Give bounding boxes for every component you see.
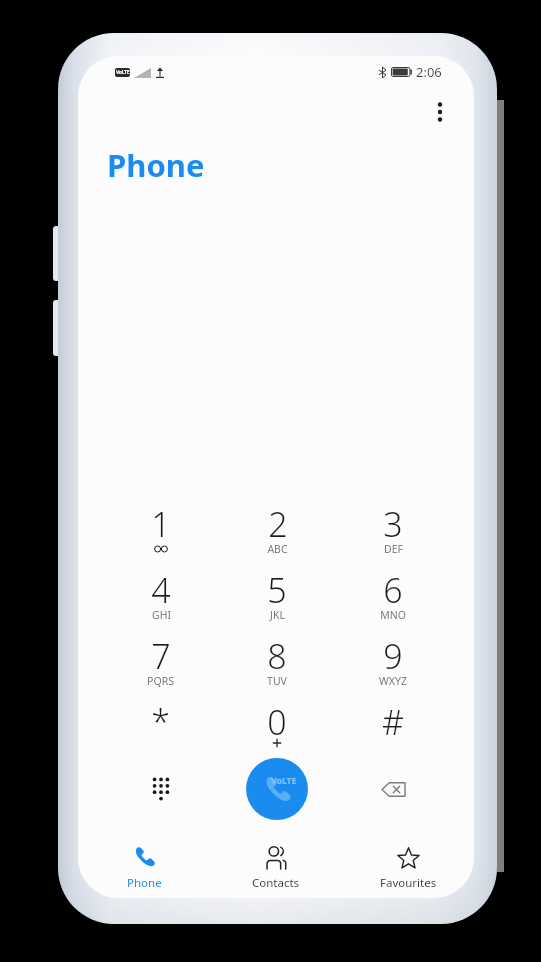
staticText: Phone xyxy=(127,875,162,891)
staticText: 6 xyxy=(383,567,403,613)
button[interactable]: Favourites xyxy=(342,838,474,896)
button[interactable]: 2 xyxy=(219,501,335,567)
staticText: 8 xyxy=(267,633,287,679)
button[interactable]: 8 xyxy=(219,633,335,699)
button[interactable]: Call xyxy=(246,758,308,820)
staticText: JKL xyxy=(270,608,285,622)
staticText: Favourites xyxy=(380,875,437,891)
staticText: Contacts xyxy=(252,875,300,891)
staticText: 0 xyxy=(267,699,287,745)
staticText: * xyxy=(151,699,170,745)
button[interactable]: 5 xyxy=(219,567,335,633)
staticText: DEF xyxy=(384,542,403,556)
staticText: PQRS xyxy=(147,674,174,688)
staticText: 3 xyxy=(383,501,403,547)
staticText: 2 xyxy=(268,501,288,547)
button[interactable]: 7 xyxy=(102,633,219,699)
button[interactable]: 6 xyxy=(335,567,451,633)
button[interactable]: Contacts xyxy=(210,838,342,896)
staticText: TUV xyxy=(267,674,287,688)
staticText: 7 xyxy=(151,633,171,679)
staticText: ABC xyxy=(267,542,288,556)
staticText: WXYZ xyxy=(379,674,407,688)
button[interactable]: 3 xyxy=(335,501,451,567)
button[interactable]: Keypad xyxy=(102,755,219,823)
button[interactable]: # xyxy=(335,699,451,765)
button[interactable]: 1 xyxy=(102,501,219,567)
staticText: 9 xyxy=(383,633,403,679)
staticText: MNO xyxy=(380,608,406,622)
staticText: Phone xyxy=(107,144,205,186)
staticText: # xyxy=(382,699,404,745)
staticText: 5 xyxy=(267,567,287,613)
staticText: 4 xyxy=(151,567,171,613)
staticText: VoLTE xyxy=(116,69,130,76)
button[interactable]: 9 xyxy=(335,633,451,699)
button[interactable]: More options xyxy=(420,92,460,132)
staticText: GHI xyxy=(152,608,171,622)
button[interactable]: Phone xyxy=(78,838,210,896)
staticText: VoLTE xyxy=(271,774,297,786)
button[interactable]: Backspace xyxy=(335,755,451,823)
button[interactable]: 4 xyxy=(102,567,219,633)
button[interactable]: 0 xyxy=(219,699,335,765)
staticText: 2:06 xyxy=(416,63,442,81)
button[interactable]: * xyxy=(102,699,219,765)
staticText: 1 xyxy=(151,501,171,547)
